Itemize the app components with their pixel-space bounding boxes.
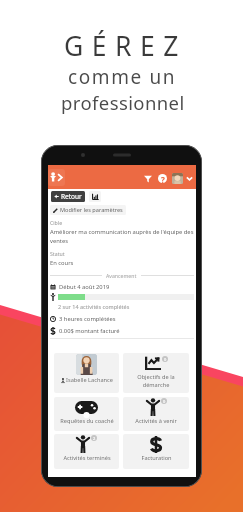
button[interactable]: Statistics [89, 191, 101, 202]
button[interactable]: Help [158, 174, 167, 183]
staticText: 0.00$ montant facturé [59, 327, 120, 335]
staticText: Requêtes du coaché [60, 417, 114, 425]
staticText: Retour [61, 192, 82, 201]
button[interactable]: Modifier les paramètres [50, 205, 126, 215]
staticText: professionnel [61, 90, 185, 115]
staticText: 3 heures complétées [59, 315, 116, 323]
staticText: 2 sur 14 activités complétés [58, 303, 130, 310]
staticText: Statut [50, 250, 65, 257]
button[interactable]: Retour [51, 191, 85, 202]
staticText: 2 [93, 436, 96, 441]
staticText: En cours [50, 259, 74, 267]
button[interactable]: Home [48, 169, 65, 186]
staticText: Objectifs de la démarche [125, 373, 187, 389]
button[interactable]: 0 [123, 397, 189, 431]
staticText: comme un [68, 64, 177, 90]
button[interactable]: 0 [123, 353, 189, 393]
button[interactable]: Account menu [186, 175, 193, 182]
staticText: Cible [50, 219, 63, 226]
button[interactable]: Profile [172, 173, 183, 184]
staticText: ? [161, 174, 165, 183]
staticText: Activités terminés [63, 454, 111, 462]
staticText: 0 [163, 399, 166, 404]
staticText: Facturation [141, 454, 172, 462]
staticText: Activités à venir [135, 417, 177, 425]
staticText: Modifier les paramètres [60, 206, 123, 214]
button[interactable]: Facturation [123, 434, 189, 469]
staticText: Améliorer ma communication auprès de l'é… [50, 228, 194, 245]
staticText: Début 4 août 2019 [59, 283, 110, 291]
button[interactable]: Requêtes du coaché [54, 397, 119, 431]
staticText: GÉREZ [64, 28, 187, 64]
button[interactable]: 2 [54, 434, 119, 469]
staticText: Avancement [106, 272, 137, 279]
staticText: 0 [164, 357, 167, 362]
button[interactable]: Isabelle Lachance [54, 353, 119, 393]
staticText: Isabelle Lachance [66, 376, 113, 384]
button[interactable]: Filter [144, 175, 152, 183]
